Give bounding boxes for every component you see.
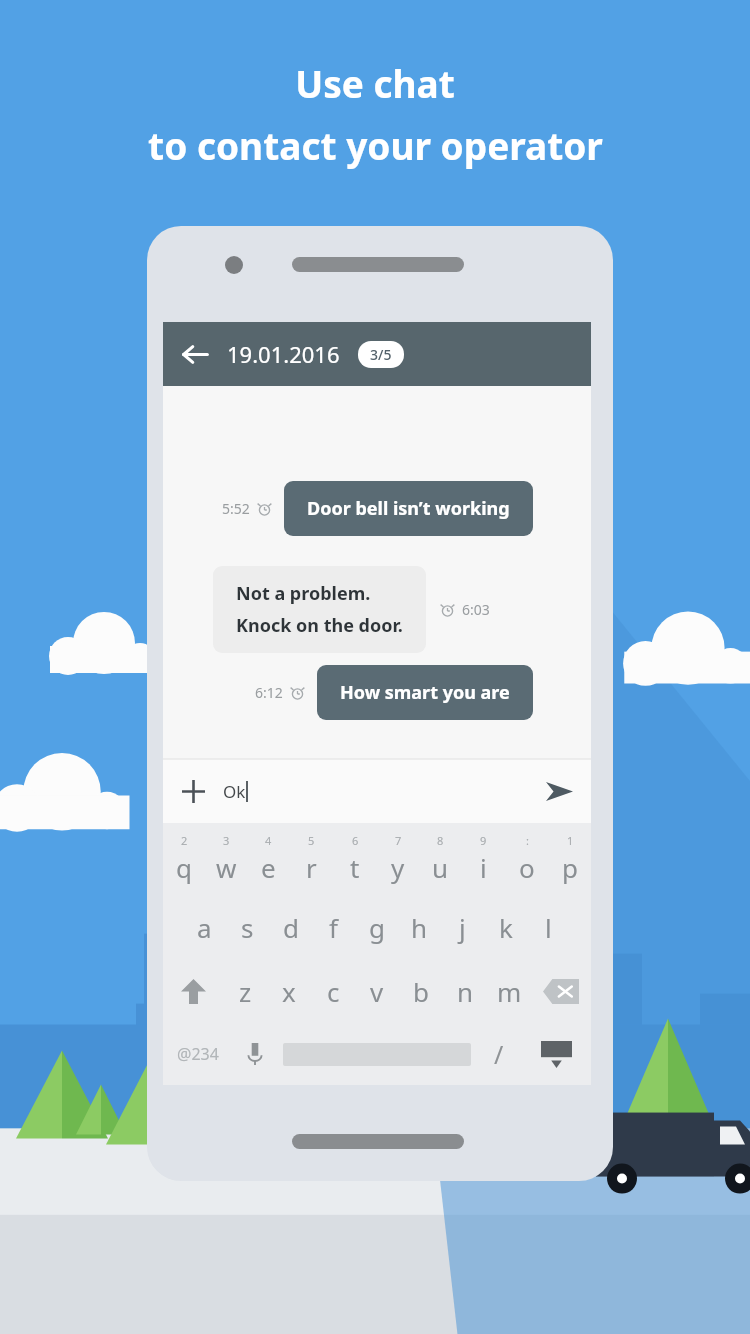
staticText: z: [239, 974, 252, 1009]
button[interactable]: 8: [419, 823, 462, 895]
button[interactable]: b: [399, 959, 443, 1023]
staticText: Use chat: [295, 58, 455, 108]
staticText: n: [457, 974, 474, 1009]
staticText: y: [391, 850, 405, 885]
button[interactable]: g: [355, 895, 398, 959]
button[interactable]: :: [505, 823, 548, 895]
staticText: h: [411, 910, 428, 945]
button[interactable]: a: [183, 895, 226, 959]
button[interactable]: 3/5: [358, 341, 404, 368]
button[interactable]: 7: [376, 823, 419, 895]
staticText: 6:12: [255, 683, 283, 702]
staticText: s: [241, 910, 254, 945]
staticText: t: [350, 850, 360, 885]
staticText: u: [432, 850, 449, 885]
staticText: 9: [480, 833, 487, 848]
staticText: to contact your operator: [148, 120, 603, 170]
button[interactable]: Backspace: [531, 959, 591, 1023]
button[interactable]: Door bell isn’t working: [284, 481, 533, 536]
button[interactable]: Add attachment: [163, 759, 223, 823]
staticText: 7: [395, 833, 402, 848]
staticText: 4: [265, 833, 272, 848]
button[interactable]: 4: [247, 823, 290, 895]
button[interactable]: l: [527, 895, 570, 959]
button[interactable]: h: [398, 895, 441, 959]
staticText: 3: [223, 833, 230, 848]
staticText: 19.01.2016: [227, 339, 340, 369]
staticText: k: [499, 910, 513, 945]
staticText: 8: [437, 833, 444, 848]
staticText: o: [519, 850, 535, 885]
button[interactable]: 6: [333, 823, 376, 895]
button[interactable]: Send: [527, 759, 591, 823]
staticText: 1: [567, 833, 574, 848]
staticText: v: [370, 974, 384, 1009]
staticText: a: [197, 910, 212, 945]
button[interactable]: k: [484, 895, 527, 959]
staticText: l: [545, 910, 552, 945]
staticText: w: [216, 850, 237, 885]
button[interactable]: v: [355, 959, 399, 1023]
button[interactable]: Voice input: [232, 1023, 278, 1085]
button[interactable]: f: [312, 895, 355, 959]
staticText: c: [327, 974, 340, 1009]
staticText: 5: [308, 833, 315, 848]
staticText: b: [413, 974, 429, 1009]
button[interactable]: 3: [205, 823, 247, 895]
button[interactable]: c: [311, 959, 355, 1023]
button[interactable]: s: [226, 895, 269, 959]
button[interactable]: How smart you are: [317, 665, 533, 720]
button[interactable]: [283, 1023, 471, 1085]
button[interactable]: 2: [163, 823, 205, 895]
button[interactable]: 5: [290, 823, 333, 895]
button[interactable]: m: [487, 959, 531, 1023]
staticText: d: [283, 910, 299, 945]
staticText: j: [459, 910, 466, 945]
staticText: f: [329, 910, 338, 945]
staticText: 3/5: [370, 345, 392, 364]
staticText: p: [562, 850, 578, 885]
staticText: Ok: [223, 780, 246, 803]
staticText: g: [369, 910, 385, 945]
staticText: i: [480, 850, 487, 885]
staticText: Door bell isn’t working: [307, 496, 510, 521]
button[interactable]: d: [269, 895, 312, 959]
staticText: 2: [181, 833, 188, 848]
button[interactable]: 1: [548, 823, 591, 895]
staticText: x: [282, 974, 296, 1009]
button[interactable]: Back: [163, 322, 227, 386]
staticText: r: [306, 850, 317, 885]
staticText: How smart you are: [340, 680, 510, 705]
button[interactable]: /: [476, 1023, 522, 1085]
staticText: 6: [352, 833, 359, 848]
staticText: :: [526, 833, 529, 848]
button[interactable]: Not a problem.: [213, 566, 426, 653]
staticText: 5:52: [222, 499, 250, 518]
button[interactable]: j: [441, 895, 484, 959]
button[interactable]: Shift: [163, 959, 223, 1023]
staticText: q: [176, 850, 192, 885]
staticText: m: [497, 974, 522, 1009]
button[interactable]: @234: [163, 1023, 232, 1085]
staticText: e: [261, 850, 276, 885]
button[interactable]: 9: [462, 823, 505, 895]
staticText: 6:03: [462, 600, 490, 619]
button[interactable]: Hide keyboard: [522, 1023, 591, 1085]
button[interactable]: z: [223, 959, 267, 1023]
staticText: @234: [177, 1043, 219, 1065]
staticText: Knock on the door.: [236, 613, 403, 638]
button[interactable]: n: [443, 959, 487, 1023]
button[interactable]: x: [267, 959, 311, 1023]
staticText: Not a problem.: [236, 581, 371, 606]
staticText: /: [494, 1037, 504, 1071]
